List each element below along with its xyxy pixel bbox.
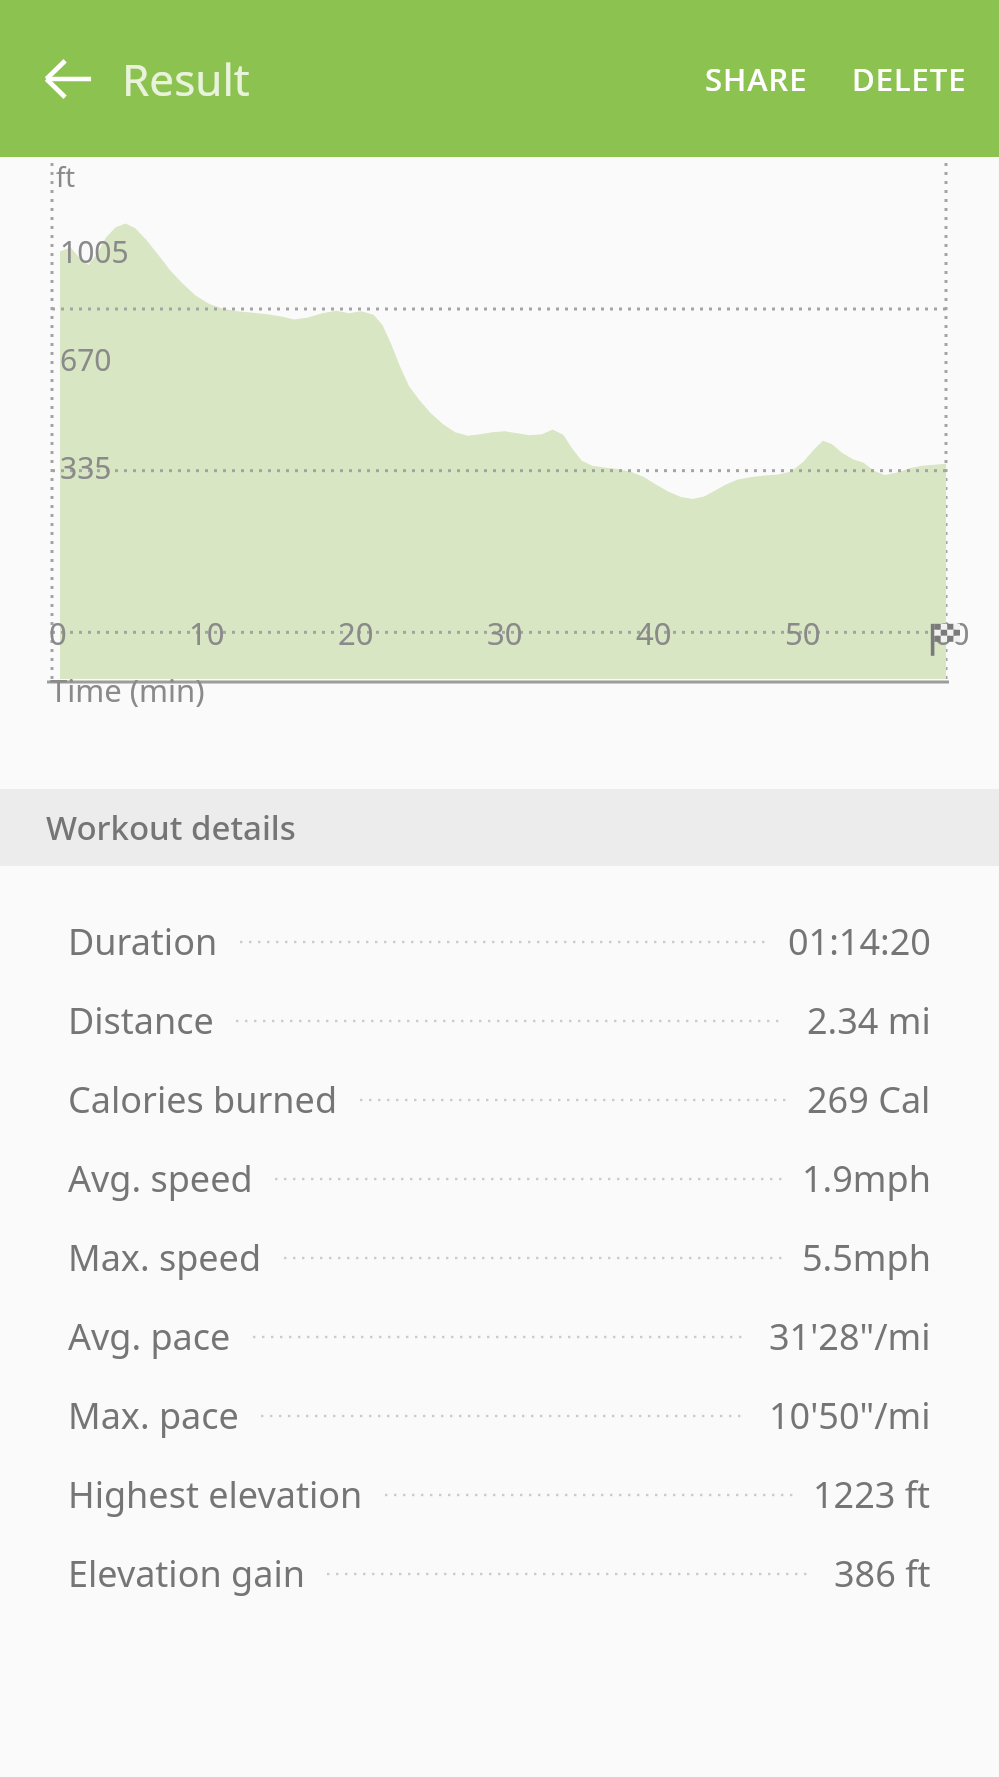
staticText: Time (min) <box>50 669 205 711</box>
staticText: 670 <box>60 339 112 380</box>
button[interactable]: Calories burned <box>0 1060 999 1139</box>
staticText: Result <box>122 49 250 109</box>
staticText: 50 <box>785 612 821 654</box>
staticText: 269 Cal <box>807 1075 931 1124</box>
button[interactable]: Back <box>18 29 118 129</box>
staticText: SHARE <box>705 58 808 100</box>
staticText: 10 <box>189 612 225 654</box>
staticText: 10'50"/mi <box>769 1391 931 1440</box>
staticText: 2.34 mi <box>807 996 931 1045</box>
button[interactable]: Duration <box>0 902 999 981</box>
staticText: Elevation gain <box>68 1549 305 1598</box>
staticText: ft <box>56 158 76 195</box>
staticText: 1005 <box>60 231 129 272</box>
staticText: Highest elevation <box>68 1470 363 1519</box>
staticText: 1.9mph <box>802 1154 931 1203</box>
button[interactable]: Distance <box>0 981 999 1060</box>
staticText: 0 <box>49 612 67 654</box>
staticText: 5.5mph <box>802 1233 931 1282</box>
staticText: 20 <box>338 612 374 654</box>
staticText: Distance <box>68 996 214 1045</box>
button[interactable]: Elevation gain <box>0 1534 999 1613</box>
staticText: Avg. pace <box>68 1312 231 1361</box>
staticText: Max. speed <box>68 1233 262 1282</box>
staticText: 01:14:20 <box>788 917 931 966</box>
button[interactable]: Highest elevation <box>0 1455 999 1534</box>
staticText: 40 <box>636 612 672 654</box>
staticText: Duration <box>68 917 218 966</box>
staticText: 31'28"/mi <box>769 1312 931 1361</box>
staticText: Calories burned <box>68 1075 338 1124</box>
staticText: 30 <box>487 612 523 654</box>
button[interactable]: Max. pace <box>0 1376 999 1455</box>
button[interactable]: SHARE <box>683 28 830 130</box>
staticText: 386 ft <box>834 1549 931 1598</box>
staticText: 1223 ft <box>813 1470 931 1519</box>
staticText: DELETE <box>852 58 967 100</box>
staticText: 335 <box>60 447 112 488</box>
button[interactable]: DELETE <box>830 28 989 130</box>
button[interactable]: Avg. pace <box>0 1297 999 1376</box>
button[interactable]: Avg. speed <box>0 1139 999 1218</box>
staticText: 60 <box>934 612 970 654</box>
button[interactable]: Max. speed <box>0 1218 999 1297</box>
staticText: Max. pace <box>68 1391 239 1440</box>
staticText: Avg. speed <box>68 1154 253 1203</box>
staticText: Workout details <box>46 805 296 850</box>
